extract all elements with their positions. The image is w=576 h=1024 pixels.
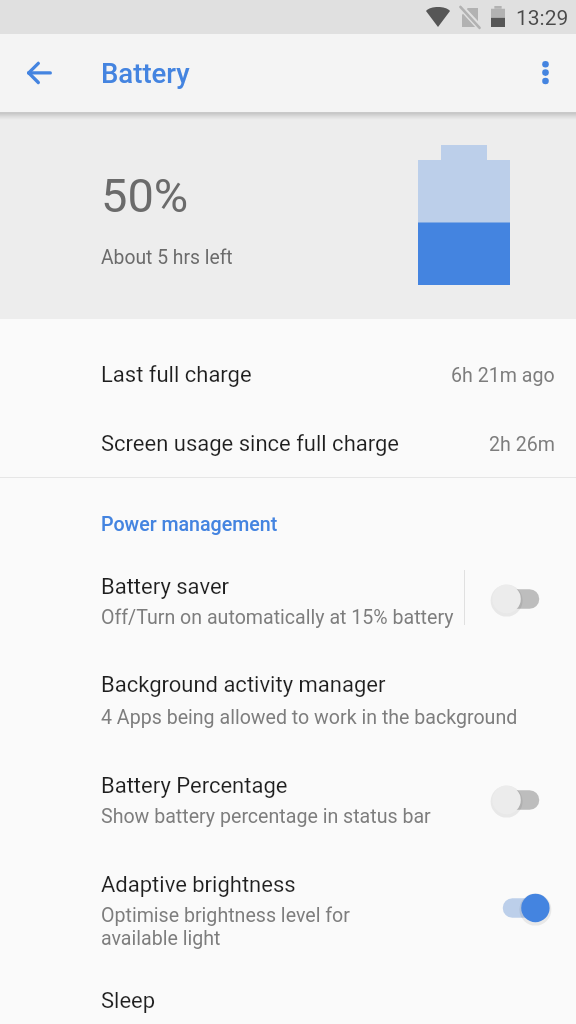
staticText: Show battery percentage in status bar (101, 805, 431, 828)
staticText: Battery Percentage (101, 773, 288, 799)
staticText: Off/Turn on automatically at 15% battery (101, 606, 454, 629)
staticText: Background activity manager (101, 672, 386, 698)
staticText: Sleep (101, 988, 156, 1014)
staticText: Optimise brightness level for available … (101, 904, 350, 950)
staticText: Adaptive brightness (101, 872, 296, 898)
staticText: Last full charge (101, 362, 252, 388)
button[interactable]: Battery Percentage (0, 772, 576, 828)
button[interactable]: Screen usage since full charge (0, 431, 576, 457)
button[interactable]: Adaptive brightness (0, 872, 576, 950)
staticText: Battery (101, 57, 190, 89)
button[interactable]: Background activity manager (0, 672, 576, 729)
button[interactable]: Battery Percentage (465, 772, 576, 828)
staticText: 13:29 (516, 6, 569, 31)
staticText: 2h 26m (489, 433, 555, 456)
staticText: 50% (101, 168, 189, 223)
staticText: 4 Apps being allowed to work in the back… (101, 706, 518, 729)
button[interactable]: More options (518, 34, 576, 113)
button[interactable]: Last full charge (0, 362, 576, 388)
staticText: 6h 21m ago (451, 364, 555, 387)
button[interactable]: Sleep (0, 988, 576, 1024)
staticText: Battery saver (101, 574, 230, 600)
button[interactable]: Battery saver (0, 573, 576, 629)
button[interactable]: Back (10, 34, 68, 113)
button[interactable]: Battery saver (465, 573, 576, 629)
staticText: About 5 hrs left (101, 246, 233, 269)
button[interactable]: Adaptive brightness (465, 883, 576, 939)
staticText: Power management (101, 513, 278, 536)
staticText: Screen usage since full charge (101, 431, 399, 457)
